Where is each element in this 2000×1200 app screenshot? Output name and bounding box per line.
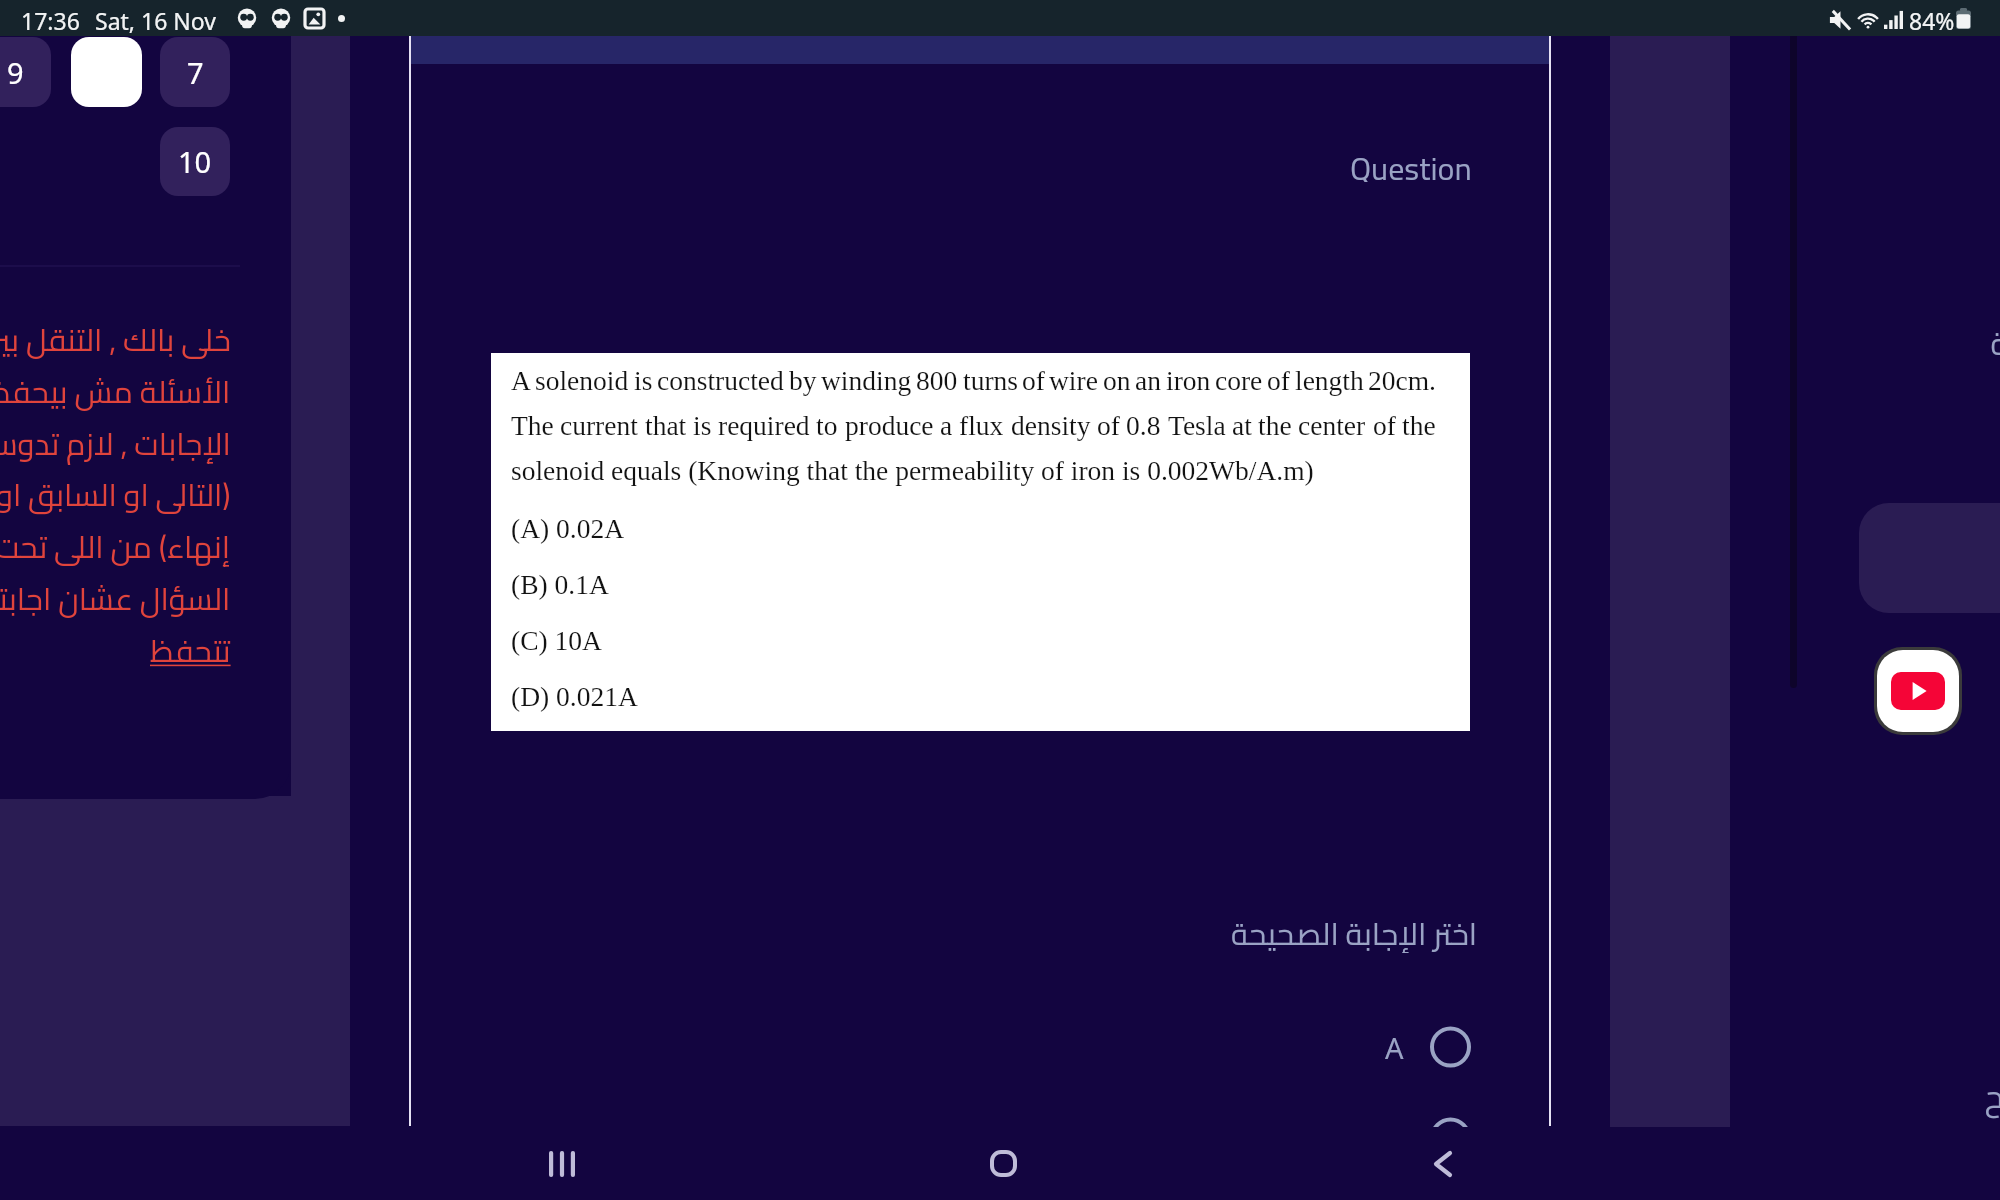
staticText: اختر الإجابة الصحيحة <box>1231 905 1478 953</box>
staticText: Tesla <box>1168 410 1226 440</box>
staticText: at <box>1232 410 1252 440</box>
staticText: wire <box>1049 365 1098 395</box>
staticText: flux <box>959 410 1004 440</box>
staticText: (B) 0.1A <box>511 569 609 599</box>
staticText: 20cm. <box>1368 365 1436 395</box>
staticText: by <box>789 365 817 395</box>
button[interactable]: 7 <box>160 37 230 107</box>
staticText: solenoid equals (Knowing that the permea… <box>511 455 1314 485</box>
staticText: الأسئلة <box>1990 313 2000 373</box>
staticText: (C) 10A <box>511 625 602 655</box>
staticText: is <box>634 365 653 395</box>
staticText: A <box>511 365 531 395</box>
staticText: 84% <box>1909 5 1955 36</box>
staticText: السؤال عشان اجابتك <box>0 570 231 620</box>
staticText: the <box>1402 410 1436 440</box>
staticText: iron <box>1166 365 1211 395</box>
button[interactable]: Home <box>953 1127 1053 1200</box>
staticText: 7 <box>187 53 204 92</box>
staticText: constructed <box>657 365 784 395</box>
staticText: density <box>1011 410 1091 440</box>
staticText: produce <box>845 410 934 440</box>
button[interactable]: Panel <box>1859 503 2000 613</box>
staticText: Sat, 16 Nov <box>95 5 216 36</box>
staticText: an <box>1135 365 1161 395</box>
staticText: current <box>560 410 638 440</box>
staticText: 10 <box>178 142 212 181</box>
staticText: on <box>1103 365 1131 395</box>
staticText: required <box>718 410 810 440</box>
staticText: to <box>816 410 838 440</box>
staticText: turns <box>963 365 1018 395</box>
staticText: إنهاء) من اللى تحت <box>0 518 231 568</box>
button[interactable]: A <box>1385 1025 1471 1069</box>
staticText: is <box>693 410 712 440</box>
staticText: 17:36 <box>21 5 80 36</box>
staticText: A <box>1385 1028 1404 1067</box>
button[interactable]: 9 <box>0 37 51 107</box>
staticText: of <box>1373 410 1396 440</box>
staticText: of <box>1097 410 1120 440</box>
button[interactable]: Question 8, current <box>71 37 142 107</box>
staticText: Question <box>1350 138 1472 182</box>
staticText: 800 <box>916 365 958 395</box>
staticText: of <box>1267 365 1290 395</box>
staticText: that <box>645 410 687 440</box>
staticText: 0.8 <box>1126 410 1161 440</box>
staticText: the <box>1258 410 1292 440</box>
staticText: The <box>511 410 554 440</box>
staticText: 9 <box>7 53 24 92</box>
staticText: (D) 0.021A <box>511 681 638 711</box>
button[interactable]: 10 <box>160 127 230 196</box>
staticText: winding <box>821 365 912 395</box>
staticText: (A) 0.02A <box>511 513 625 543</box>
button[interactable]: B <box>1385 1116 1471 1160</box>
staticText: (التالى او السابق او <box>0 466 231 516</box>
staticText: a <box>940 410 953 440</box>
button[interactable]: Open YouTube <box>1877 650 1959 732</box>
staticText: ةالصحيح <box>1984 1066 2000 1126</box>
staticText: of <box>1022 365 1045 395</box>
staticText: تتحفظ <box>150 622 231 672</box>
staticText: الأسئلة مش بيحفظ <box>0 363 231 413</box>
staticText: خلي بالك , التنقل بين <box>0 311 231 361</box>
staticText: core <box>1215 365 1263 395</box>
staticText: solenoid <box>535 365 629 395</box>
staticText: length <box>1295 365 1364 395</box>
button[interactable]: Back <box>1393 1127 1493 1200</box>
staticText: الإجابات , لازم تدوس <box>0 415 231 465</box>
button[interactable]: Recent apps <box>512 1127 612 1200</box>
staticText: center <box>1298 410 1366 440</box>
